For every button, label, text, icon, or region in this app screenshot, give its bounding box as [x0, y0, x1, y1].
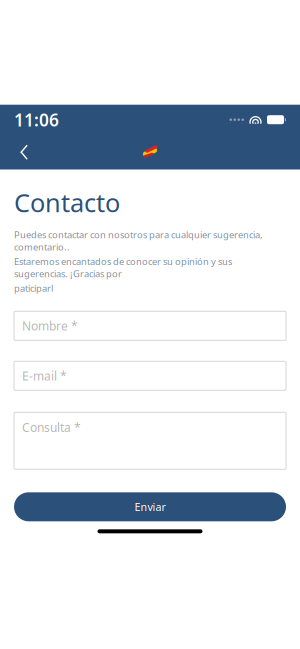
- staticText: 11:06: [14, 108, 59, 131]
- staticText: Estaremos encantados de conocer su opini…: [14, 255, 232, 280]
- staticText: Nombre *: [22, 318, 78, 334]
- button[interactable]: Back: [8, 135, 40, 169]
- staticText: Enviar: [134, 500, 165, 514]
- staticText: E-mail *: [22, 368, 67, 384]
- button[interactable]: Enviar: [14, 492, 286, 521]
- staticText: Consulta *: [22, 419, 81, 435]
- staticText: paticiparl: [14, 282, 53, 294]
- staticText: Puedes contactar con nosotros para cualq…: [14, 228, 263, 253]
- staticText: Contacto: [14, 186, 120, 219]
